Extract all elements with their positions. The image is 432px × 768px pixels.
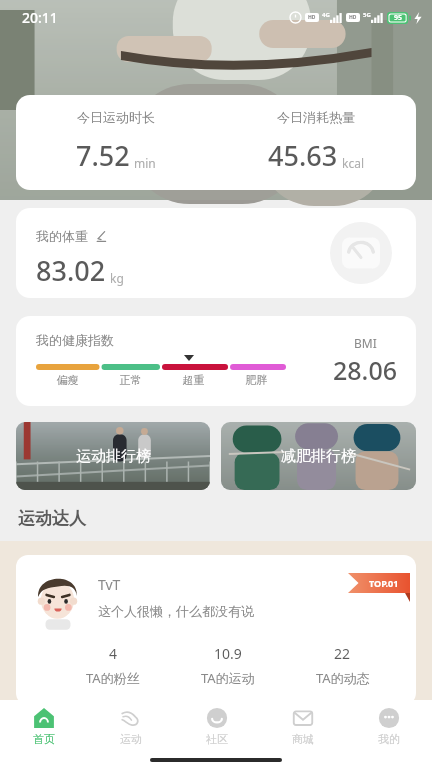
staticText: 7.52 [76,137,130,174]
staticText: 运动 [120,732,142,746]
staticText: 我的体重 [36,228,88,244]
staticText: HD [308,14,316,21]
staticText: 83.02 [36,252,106,289]
staticText: 28.06 [333,353,398,387]
staticText: 今日运动时长 [77,109,155,125]
other: Edit weight [96,230,108,242]
button[interactable]: 商城 [260,700,346,752]
button[interactable]: 10.9 [170,644,285,687]
staticText: 肥胖 [225,373,288,387]
staticText: 减肥排行榜 [281,447,356,466]
staticText: 商城 [292,732,314,746]
button[interactable]: TvT [16,555,416,705]
staticText: min [134,155,156,171]
staticText: 95 [394,13,403,23]
staticText: 首页 [33,732,55,746]
button[interactable]: 今日运动时长 [16,95,416,190]
button[interactable]: 减肥排行榜 [221,422,416,490]
staticText: 偏瘦 [36,373,99,387]
staticText: 这个人很懒，什么都没有说 [98,603,254,619]
button[interactable]: 我的 [346,700,432,752]
staticText: TA的粉丝 [86,669,140,687]
staticText: HD [349,14,357,21]
staticText: 超重 [162,373,225,387]
staticText: TA的运动 [201,669,255,687]
staticText: 22 [334,644,351,663]
staticText: TOP.01 [369,577,399,589]
staticText: TvT [98,575,121,594]
staticText: 正常 [99,373,162,387]
staticText: 10.9 [214,644,242,663]
button[interactable]: 社区 [174,700,260,752]
button[interactable]: 我的体重 [16,208,416,298]
staticText: 我的健康指数 [36,332,114,348]
staticText: BMI [354,335,377,351]
staticText: 20:11 [22,8,58,27]
staticText: 我的 [378,732,400,746]
button[interactable]: 我的健康指数 [16,316,416,406]
button[interactable]: 运动排行榜 [16,422,210,490]
staticText: kcal [342,155,364,171]
staticText: 社区 [206,732,228,746]
staticText: 今日消耗热量 [277,109,355,125]
button[interactable]: 22 [285,644,400,687]
staticText: kg [110,270,124,286]
staticText: 45.63 [268,137,338,174]
staticText: 4G [322,11,330,19]
button[interactable]: 4 [56,644,170,687]
button[interactable]: 运动 [87,700,174,752]
button[interactable]: 首页 [0,700,87,752]
staticText: 5G [363,11,371,19]
staticText: 4 [109,644,118,663]
staticText: 运动达人 [18,508,86,529]
staticText: 运动排行榜 [76,447,151,466]
staticText: TA的动态 [316,669,370,687]
